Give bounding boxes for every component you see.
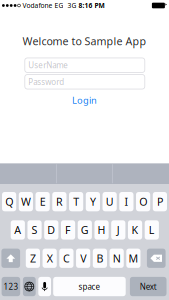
staticText: 123	[3, 281, 18, 292]
button[interactable]: X	[42, 249, 57, 268]
button[interactable]: E	[35, 192, 50, 211]
staticText: Y	[90, 195, 96, 209]
button[interactable]: G	[78, 220, 92, 240]
staticText: H	[97, 223, 105, 237]
staticText: V	[80, 251, 86, 265]
button[interactable]: F	[61, 220, 75, 240]
button[interactable]: C	[59, 249, 73, 268]
button[interactable]: Login	[72, 94, 97, 106]
button[interactable]: O	[136, 192, 150, 211]
staticText: T	[73, 195, 79, 209]
button[interactable]: Next	[130, 277, 166, 296]
button[interactable]: Next keyboard	[23, 277, 36, 296]
staticText: Next	[140, 281, 157, 292]
staticText: R	[56, 195, 63, 209]
staticText: N	[113, 251, 121, 265]
staticText: Password	[28, 76, 64, 87]
button[interactable]: Shift	[1, 249, 20, 268]
button[interactable]: K	[128, 220, 142, 240]
button[interactable]: I	[119, 192, 133, 211]
button[interactable]: H	[94, 220, 109, 240]
button[interactable]: M	[126, 249, 140, 268]
button[interactable]: U	[102, 192, 117, 211]
button[interactable]: Q	[2, 192, 16, 211]
staticText: X	[47, 251, 53, 265]
button[interactable]: R	[52, 192, 66, 211]
staticText: P	[157, 195, 163, 209]
button[interactable]: L	[145, 220, 159, 240]
staticText: W	[21, 195, 31, 209]
staticText: J	[117, 223, 120, 237]
button[interactable]: W	[19, 192, 33, 211]
staticText: Vodafone EG	[20, 1, 63, 10]
button[interactable]: V	[76, 249, 90, 268]
staticText: E	[40, 195, 46, 209]
staticText: F	[65, 223, 71, 237]
staticText: 3G	[63, 1, 76, 10]
button[interactable]: S	[27, 220, 42, 240]
staticText: G	[81, 223, 89, 237]
staticText: M	[128, 251, 138, 265]
staticText: 8:16 PM	[76, 1, 104, 10]
staticText: Welcome to Sample App	[22, 34, 146, 48]
staticText: I	[124, 195, 128, 209]
staticText: Login	[72, 94, 97, 106]
button[interactable]: Dictation	[38, 277, 51, 296]
staticText: K	[131, 223, 138, 237]
staticText: B	[96, 251, 103, 265]
staticText: C	[63, 251, 70, 265]
staticText: UserName	[28, 60, 68, 70]
button[interactable]: A	[11, 220, 25, 240]
staticText: space	[78, 281, 100, 292]
staticText: Q	[5, 195, 13, 209]
button[interactable]: Z	[26, 249, 40, 268]
staticText: D	[47, 223, 55, 237]
button[interactable]: 123	[2, 277, 20, 296]
button[interactable]: Y	[86, 192, 100, 211]
button[interactable]: space	[53, 277, 126, 296]
staticText: Z	[30, 251, 36, 265]
button[interactable]: T	[69, 192, 83, 211]
staticText: O	[139, 195, 147, 209]
staticText: A	[14, 223, 21, 237]
staticText: S	[31, 223, 37, 237]
button[interactable]: P	[153, 192, 167, 211]
button[interactable]: B	[93, 249, 107, 268]
button[interactable]: J	[111, 220, 125, 240]
button[interactable]: Delete	[147, 249, 166, 268]
button[interactable]: N	[109, 249, 124, 268]
staticText: U	[106, 195, 114, 209]
button[interactable]: D	[44, 220, 58, 240]
staticText: L	[149, 223, 155, 237]
